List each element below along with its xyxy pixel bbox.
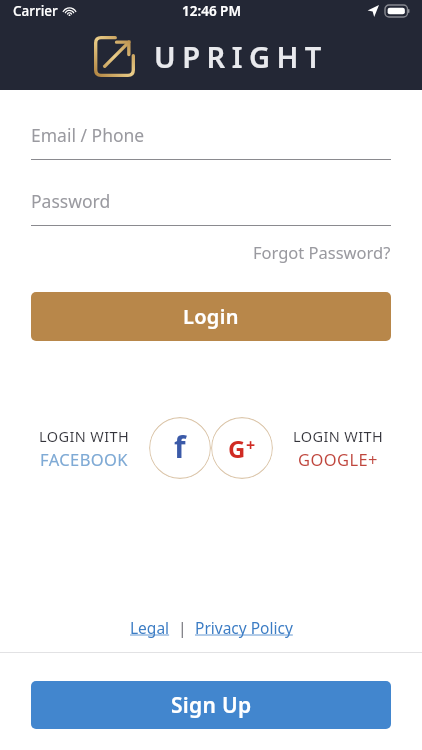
staticText: 12:46 PM — [182, 2, 241, 20]
staticText: f — [174, 426, 186, 467]
staticText: + — [246, 434, 256, 456]
button[interactable]: Password — [31, 189, 391, 226]
staticText: LOGIN WITH — [39, 426, 130, 446]
staticText: Carrier — [13, 2, 58, 20]
button[interactable]: Sign Up — [31, 681, 391, 729]
staticText: Password — [31, 189, 111, 213]
button[interactable]: Login — [31, 292, 391, 341]
staticText: G — [228, 432, 246, 465]
staticText: FACEBOOK — [40, 448, 128, 470]
button[interactable]: Login with Google Plus — [211, 417, 273, 479]
staticText: UPRIGHT — [154, 37, 328, 76]
staticText: Sign Up — [171, 691, 252, 720]
button[interactable]: Legal — [128, 614, 172, 641]
button[interactable]: LOGIN WITH — [272, 426, 404, 470]
staticText: GOOGLE+ — [298, 448, 378, 470]
staticText: Login — [183, 303, 239, 330]
staticText: Legal — [130, 617, 170, 638]
button[interactable]: Email / Phone — [31, 123, 391, 160]
staticText: LOGIN WITH — [293, 426, 384, 446]
staticText: | — [178, 617, 187, 638]
staticText: Privacy Policy — [195, 617, 293, 638]
button[interactable]: Privacy Policy — [193, 614, 295, 641]
button[interactable]: Forgot Password? — [251, 238, 393, 266]
button[interactable]: LOGIN WITH — [18, 426, 150, 470]
staticText: Forgot Password? — [253, 241, 391, 263]
button[interactable]: Login with Facebook — [149, 417, 211, 479]
staticText: Email / Phone — [31, 123, 145, 147]
